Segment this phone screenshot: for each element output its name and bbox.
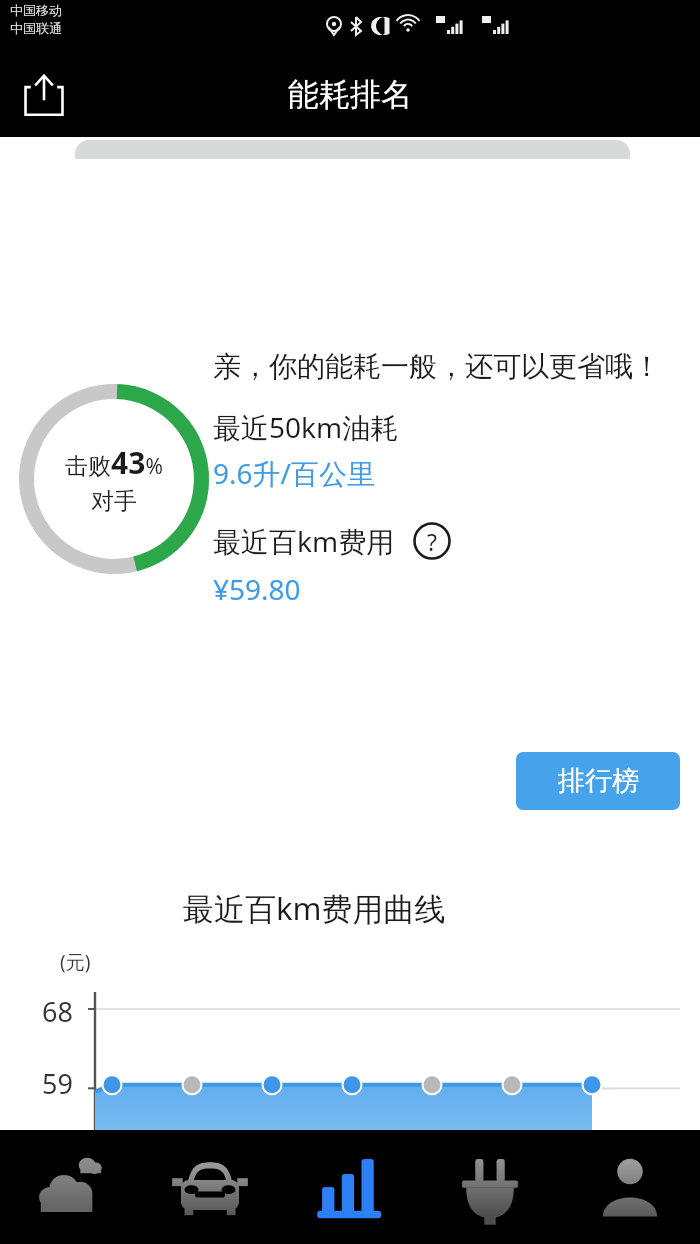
staticText: 击败43%	[65, 442, 163, 483]
staticText: 9.6升/百公里	[213, 454, 375, 492]
staticText: ?	[427, 526, 437, 557]
staticText: 最近百km费用曲线	[183, 887, 446, 929]
staticText: 最近50km油耗	[213, 408, 399, 446]
staticText: 中国移动	[10, 2, 62, 18]
staticText: 亲，你的能耗一般，还可以更省哦！	[213, 349, 661, 384]
staticText: 68	[42, 993, 73, 1030]
button[interactable]: 我的	[560, 1130, 700, 1244]
button[interactable]: 充电	[420, 1130, 560, 1244]
staticText: 中国联通	[10, 20, 62, 36]
staticText: 对手	[91, 487, 137, 516]
staticText: (元)	[60, 949, 91, 975]
staticText: 59	[42, 1065, 73, 1102]
staticText: ¥59.80	[213, 570, 301, 608]
staticText: 最近百km费用	[213, 522, 395, 560]
staticText: 能耗排名	[288, 75, 412, 114]
button[interactable]: 排行榜	[516, 752, 680, 810]
button[interactable]: 帮助	[411, 520, 453, 562]
button[interactable]: 能耗	[280, 1130, 420, 1244]
staticText: 排行榜	[558, 764, 639, 798]
button[interactable]: 车辆	[140, 1130, 280, 1244]
staticText: 50	[42, 1148, 73, 1185]
button[interactable]: 天气	[0, 1130, 140, 1244]
button[interactable]: 分享	[8, 59, 80, 131]
